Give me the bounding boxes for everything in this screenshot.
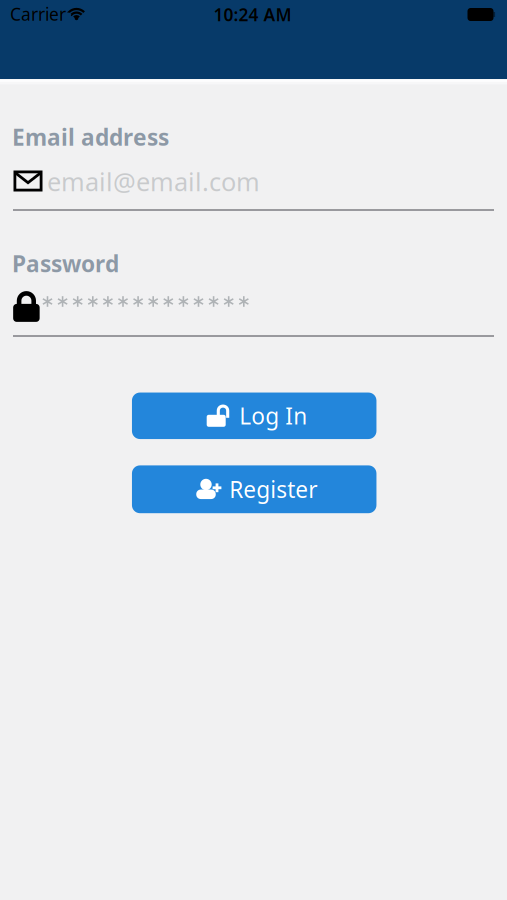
button[interactable]: email@email.com bbox=[13, 164, 494, 211]
button[interactable]: Register bbox=[132, 465, 376, 513]
staticText: 10:24 AM bbox=[213, 3, 291, 26]
staticText: Password bbox=[12, 248, 119, 278]
button[interactable]: Log In bbox=[132, 393, 376, 439]
button[interactable] bbox=[13, 285, 494, 338]
staticText: Carrier bbox=[10, 2, 66, 25]
staticText: Register bbox=[229, 474, 317, 504]
staticText: Email address bbox=[12, 122, 169, 152]
staticText: email@email.com bbox=[47, 165, 260, 198]
staticText: Log In bbox=[239, 401, 307, 431]
